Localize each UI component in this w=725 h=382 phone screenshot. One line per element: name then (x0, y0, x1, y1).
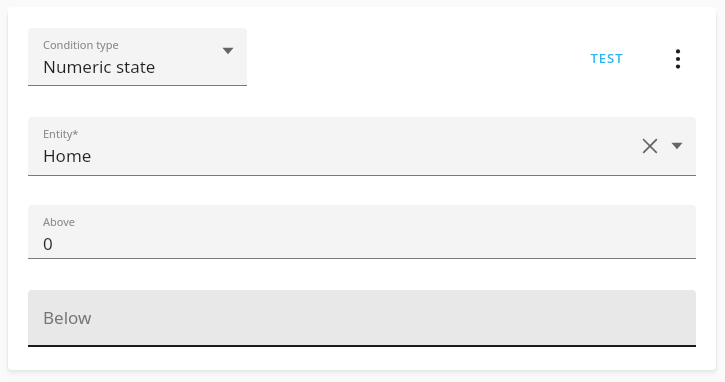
button[interactable]: Clear entity (639, 135, 661, 157)
button[interactable]: Open condition type menu (217, 40, 239, 62)
staticText: Condition type (43, 37, 119, 52)
staticText: Below (43, 306, 92, 329)
staticText: TEST (590, 49, 624, 67)
button[interactable]: TEST (580, 42, 634, 74)
staticText: Entity* (43, 126, 79, 141)
button[interactable]: Entity* (28, 117, 696, 175)
staticText: Home (43, 144, 92, 167)
button[interactable]: Above (28, 205, 696, 258)
button[interactable]: Below (28, 290, 696, 345)
button[interactable]: Open entity list (666, 135, 688, 157)
staticText: Above (43, 214, 76, 229)
staticText: Numeric state (43, 55, 156, 78)
button[interactable]: Condition type (28, 28, 247, 85)
staticText: 0 (43, 232, 53, 255)
button[interactable]: More options (663, 44, 693, 74)
